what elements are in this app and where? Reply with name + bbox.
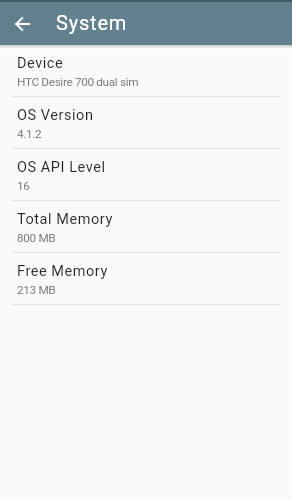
- staticText: Total Memory: [17, 211, 113, 228]
- button[interactable]: OS API Level: [0, 149, 292, 201]
- button[interactable]: [0, 2, 44, 45]
- staticText: OS Version: [17, 107, 94, 124]
- staticText: HTC Desire 700 dual sim: [17, 75, 139, 89]
- staticText: 213 MB: [17, 283, 56, 297]
- staticText: OS API Level: [17, 159, 106, 176]
- staticText: Free Memory: [17, 263, 108, 280]
- button[interactable]: Free Memory: [0, 253, 292, 305]
- staticText: 800 MB: [17, 231, 56, 245]
- button[interactable]: Device: [0, 45, 292, 97]
- button[interactable]: OS Version: [0, 97, 292, 149]
- staticText: 4.1.2: [17, 127, 42, 141]
- staticText: 16: [17, 179, 30, 193]
- staticText: System: [56, 11, 128, 34]
- staticText: Device: [17, 55, 64, 72]
- button[interactable]: Total Memory: [0, 201, 292, 253]
